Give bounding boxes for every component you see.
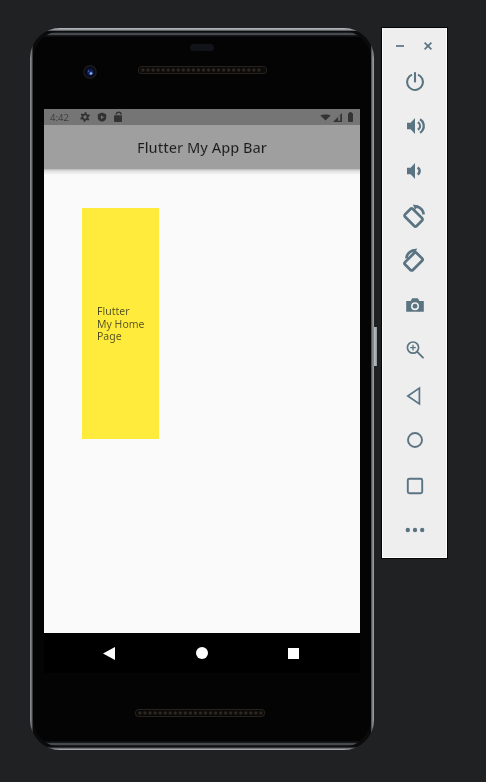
button[interactable]: More [399,514,431,546]
button[interactable]: Home [399,424,431,456]
button[interactable]: Volume up [399,110,431,142]
button[interactable]: Zoom [399,334,431,366]
button[interactable]: Screenshot [399,289,431,321]
button[interactable]: Rotate left [399,200,431,232]
staticText: Flutter My App Bar [137,137,267,157]
button[interactable]: Flutter My App Bar [44,125,360,169]
staticText: Flutter My Home Page [97,304,145,343]
staticText: 4:42 [50,111,69,124]
button[interactable]: Power [399,65,431,97]
button[interactable]: Overview [399,470,431,502]
button[interactable]: Minimize [389,35,411,57]
button[interactable]: Close [417,35,439,57]
button[interactable]: Back [399,380,431,412]
button[interactable]: Home [186,637,218,669]
button[interactable]: Rotate right [399,244,431,276]
button[interactable]: Flutter My Home Page [82,208,159,439]
button[interactable]: Volume down [399,155,431,187]
button[interactable]: Recents [277,637,309,669]
button[interactable]: Back [93,637,125,669]
